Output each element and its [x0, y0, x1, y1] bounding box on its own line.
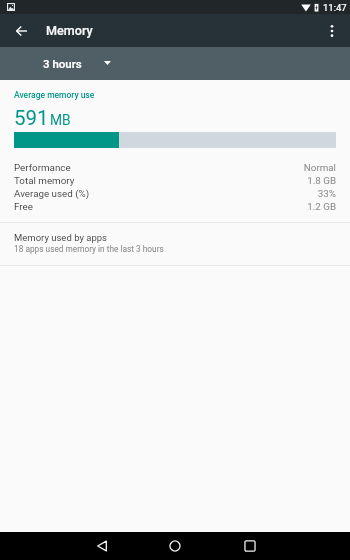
- staticText: 591: [14, 106, 49, 130]
- staticText: 18 apps used memory in the last 3 hours: [14, 244, 164, 254]
- staticText: Memory used by apps: [14, 232, 108, 243]
- button[interactable]: More options: [316, 15, 348, 47]
- staticText: Total memory: [14, 175, 75, 186]
- button[interactable]: Memory used by apps: [0, 223, 350, 265]
- staticText: Average memory use: [14, 90, 95, 100]
- button[interactable]: Back: [67, 532, 139, 560]
- button[interactable]: Home: [139, 532, 211, 560]
- button[interactable]: Navigate up: [5, 15, 37, 47]
- staticText: MB: [50, 112, 71, 128]
- staticText: Performance: [14, 162, 71, 173]
- staticText: 1.8 GB: [307, 175, 336, 186]
- staticText: Free: [14, 201, 33, 212]
- staticText: 33%: [317, 188, 336, 199]
- staticText: 3 hours: [43, 57, 82, 70]
- button[interactable]: 3 hours: [43, 57, 111, 70]
- staticText: 1.2 GB: [307, 201, 336, 212]
- button[interactable]: Recents: [211, 532, 283, 560]
- staticText: Memory: [46, 23, 93, 38]
- staticText: Normal: [303, 162, 336, 173]
- staticText: Average used (%): [14, 188, 90, 199]
- staticText: 11:47: [323, 2, 347, 13]
